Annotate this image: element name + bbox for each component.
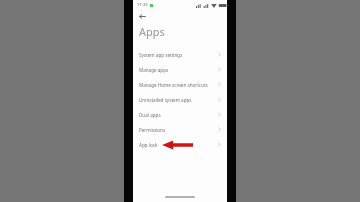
staticText: Uninstalled system apps: [139, 97, 192, 103]
staticText: Manage Home screen shortcuts: [139, 82, 208, 88]
button[interactable]: Back: [133, 10, 151, 22]
staticText: Apps: [139, 24, 165, 39]
button[interactable]: App lock: [133, 137, 227, 152]
staticText: App lock: [139, 142, 158, 148]
button[interactable]: Manage Home screen shortcuts: [133, 77, 227, 92]
staticText: Dual apps: [139, 112, 161, 118]
button[interactable]: Uninstalled system apps: [133, 92, 227, 107]
staticText: 11:33: [137, 2, 148, 8]
staticText: System app settings: [139, 52, 183, 58]
button[interactable]: Dual apps: [133, 107, 227, 122]
staticText: Manage apps: [139, 67, 169, 73]
button[interactable]: Manage apps: [133, 62, 227, 77]
staticText: Permissions: [139, 127, 166, 133]
button[interactable]: Permissions: [133, 122, 227, 137]
button[interactable]: System app settings: [133, 47, 227, 62]
